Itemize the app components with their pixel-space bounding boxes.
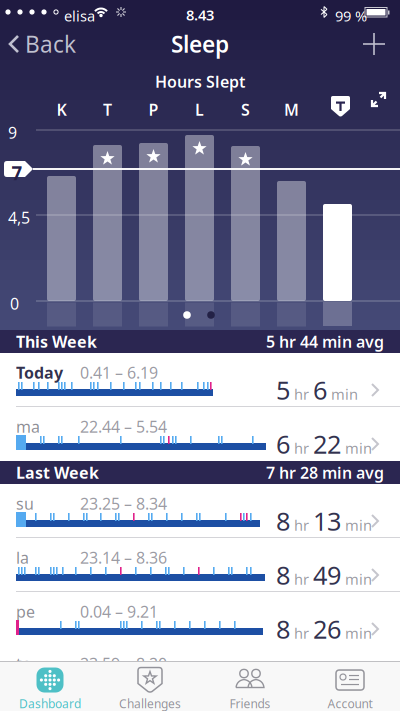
staticText: 23.25 – 8.34 (80, 493, 167, 514)
staticText: 8 (276, 612, 290, 646)
staticText: Last Week (16, 462, 99, 483)
button[interactable]: la (0, 538, 400, 592)
button[interactable]: Today (0, 353, 400, 407)
button[interactable]: ma (0, 407, 400, 461)
staticText: 22 (313, 427, 341, 461)
staticText: P (148, 99, 158, 120)
staticText: 13 (313, 504, 341, 538)
staticText: hr (294, 438, 309, 458)
button[interactable]: pe (0, 592, 400, 646)
staticText: 8.43 (186, 5, 214, 24)
staticText: 4,5 (8, 207, 30, 228)
staticText: 7 hr 28 min avg (266, 462, 384, 483)
staticText: 23.14 – 8.36 (80, 547, 167, 568)
staticText: 5 hr 44 min avg (266, 331, 384, 352)
staticText: L (195, 99, 204, 120)
staticText: 26 (313, 612, 341, 646)
staticText: 6 (276, 427, 290, 461)
button[interactable]: Account (300, 661, 400, 711)
staticText: T (103, 99, 112, 120)
staticText: 0.04 – 9.21 (80, 601, 158, 622)
staticText: to (16, 653, 32, 674)
staticText: Back (25, 29, 76, 59)
staticText: 8 (276, 504, 290, 538)
staticText: 22.44 – 5.54 (80, 416, 167, 437)
button[interactable]: Expand chart (370, 91, 387, 108)
staticText: elisa (64, 6, 95, 25)
staticText: min (345, 569, 372, 589)
staticText: la (16, 547, 29, 568)
staticText: su (16, 493, 34, 514)
staticText: Hours Slept (155, 71, 245, 92)
staticText: hr (294, 569, 309, 589)
button[interactable]: su (0, 484, 400, 538)
staticText: hr (294, 623, 309, 643)
button[interactable]: Dashboard (0, 661, 100, 711)
staticText: min (345, 515, 372, 535)
staticText: 9 (8, 122, 17, 143)
staticText: hr (294, 384, 309, 404)
staticText: hr (294, 515, 309, 535)
staticText: 49 (313, 558, 341, 592)
staticText: 6 (313, 373, 327, 407)
staticText: Today (16, 362, 63, 383)
staticText: Dashboard (19, 695, 81, 711)
staticText: M (284, 99, 299, 120)
staticText: 5 (276, 373, 290, 407)
staticText: 99 % (335, 6, 367, 25)
staticText: Friends (229, 695, 270, 711)
staticText: Challenges (119, 695, 181, 711)
button[interactable]: Add (363, 33, 385, 55)
staticText: 23.59 – 8.20 (80, 653, 167, 674)
staticText: 0.41 – 6.19 (80, 362, 158, 383)
staticText: 8 (276, 558, 290, 592)
staticText: This Week (16, 331, 97, 352)
staticText: min (345, 623, 372, 643)
staticText: ma (16, 416, 40, 437)
staticText: 7 (11, 160, 22, 185)
staticText: pe (16, 601, 35, 622)
button[interactable]: Back (8, 24, 76, 64)
staticText: min (331, 384, 358, 404)
button[interactable]: Friends (200, 661, 300, 711)
staticText: 0 (10, 293, 19, 314)
staticText: Account (327, 695, 372, 711)
staticText: min (345, 438, 372, 458)
staticText: K (56, 99, 66, 120)
staticText: Sleep (171, 29, 229, 59)
button[interactable]: Challenges (100, 661, 200, 711)
staticText: S (241, 99, 250, 120)
